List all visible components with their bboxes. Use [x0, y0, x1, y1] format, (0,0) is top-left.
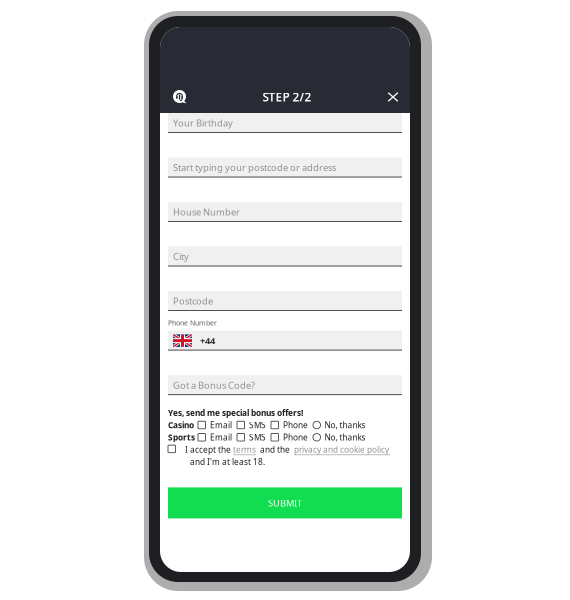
- button[interactable]: House Number: [168, 202, 402, 222]
- button[interactable]: SMS: [237, 432, 271, 443]
- staticText: Phone: [283, 432, 308, 443]
- staticText: Start typing your postcode or address: [173, 161, 336, 174]
- button[interactable]: Phone: [271, 432, 313, 443]
- staticText: SMS: [249, 419, 266, 431]
- button[interactable]: Contact support: [166, 81, 194, 113]
- button[interactable]: No, thanks: [313, 432, 366, 443]
- staticText: City: [173, 250, 189, 263]
- staticText: terms: [233, 444, 256, 455]
- button[interactable]: Phone number, United Kingdom +44: [168, 331, 402, 351]
- staticText: +44: [200, 334, 215, 347]
- staticText: Got a Bonus Code?: [173, 379, 255, 391]
- staticText: Postcode: [173, 295, 213, 307]
- staticText: Sports: [168, 432, 195, 443]
- button[interactable]: Your Birthday: [168, 113, 402, 133]
- button[interactable]: terms: [233, 444, 256, 455]
- button[interactable]: Email: [198, 432, 237, 443]
- button[interactable]: Email: [198, 419, 237, 431]
- staticText: No, thanks: [324, 432, 365, 443]
- staticText: Phone: [283, 419, 308, 431]
- staticText: SMS: [249, 432, 266, 443]
- button[interactable]: Phone: [271, 419, 313, 431]
- staticText: privacy and cookie policy: [294, 444, 389, 455]
- staticText: House Number: [173, 206, 240, 218]
- staticText: and I'm at least 18.: [190, 456, 265, 467]
- button[interactable]: Got a Bonus Code?: [168, 375, 402, 395]
- staticText: Your Birthday: [173, 117, 233, 129]
- staticText: Yes, send me special bonus offers!: [168, 407, 303, 418]
- button[interactable]: Accept terms and conditions: [168, 444, 185, 454]
- button[interactable]: SMS: [237, 419, 271, 431]
- button[interactable]: SUBMIT: [168, 487, 402, 518]
- staticText: SUBMIT: [268, 497, 302, 509]
- button[interactable]: No, thanks: [313, 419, 366, 431]
- staticText: I accept the: [185, 444, 231, 455]
- staticText: Phone Number: [168, 318, 217, 328]
- button[interactable]: Start typing your postcode or address: [168, 157, 402, 177]
- button[interactable]: Postcode: [168, 291, 402, 311]
- staticText: STEP 2/2: [262, 89, 311, 105]
- staticText: Email: [210, 419, 232, 431]
- staticText: Casino: [168, 419, 194, 431]
- button[interactable]: City: [168, 246, 402, 266]
- button[interactable]: privacy and cookie policy: [294, 444, 390, 455]
- staticText: Email: [210, 432, 232, 443]
- staticText: and the: [260, 444, 290, 455]
- staticText: No, thanks: [324, 419, 365, 431]
- button[interactable]: Close: [379, 81, 407, 113]
